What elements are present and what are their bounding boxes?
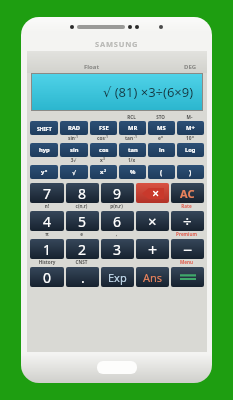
- button[interactable]: Float: [84, 63, 100, 71]
- staticText: 3: [103, 156, 105, 161]
- button[interactable]: 1: [30, 239, 64, 259]
- button[interactable]: 2: [66, 239, 99, 259]
- button[interactable]: %: [119, 165, 146, 179]
- staticText: x: [100, 168, 104, 176]
- staticText: Premium: [169, 231, 204, 237]
- staticText: 7: [43, 184, 52, 203]
- staticText: CNST: [64, 259, 99, 265]
- button[interactable]: AC: [171, 183, 204, 203]
- button[interactable]: +: [136, 239, 169, 259]
- staticText: x: [161, 134, 163, 139]
- button[interactable]: RAD: [60, 121, 88, 135]
- button[interactable]: .: [66, 267, 99, 287]
- button[interactable]: Delete: [136, 183, 169, 203]
- staticText: c(n,r): [64, 203, 99, 209]
- staticText: ): [189, 168, 192, 177]
- staticText: √ (81) ×3÷(6×9): [103, 83, 194, 101]
- button[interactable]: x: [90, 165, 117, 179]
- staticText: RCL: [117, 114, 146, 120]
- staticText: 2: [104, 168, 107, 173]
- staticText: 2: [78, 240, 87, 259]
- button[interactable]: 4: [30, 211, 64, 231]
- staticText: hyp: [39, 146, 50, 154]
- staticText: cos: [99, 146, 109, 154]
- button[interactable]: Home: [97, 361, 137, 374]
- staticText: sin: [70, 146, 79, 154]
- button[interactable]: sin: [60, 143, 88, 157]
- staticText: tan: [128, 146, 138, 154]
- staticText: Log: [185, 146, 196, 154]
- staticText: 3√: [59, 157, 88, 163]
- button[interactable]: √: [60, 165, 88, 179]
- button[interactable]: 0: [30, 267, 64, 287]
- button[interactable]: y: [30, 165, 58, 179]
- staticText: p(n,r): [99, 203, 134, 209]
- button[interactable]: ): [177, 165, 204, 179]
- button[interactable]: MS: [148, 121, 175, 135]
- staticText: y: [41, 168, 45, 176]
- staticText: .: [81, 268, 85, 287]
- staticText: Menu: [169, 259, 204, 265]
- staticText: 4: [43, 212, 52, 231]
- staticText: +: [148, 239, 158, 259]
- button[interactable]: 7: [30, 183, 64, 203]
- staticText: sin: [68, 135, 75, 142]
- staticText: ln: [159, 146, 165, 154]
- button[interactable]: cos: [90, 143, 117, 157]
- staticText: ÷: [183, 211, 192, 231]
- button[interactable]: −: [171, 239, 204, 259]
- staticText: Exp: [108, 270, 127, 285]
- button[interactable]: ÷: [171, 211, 204, 231]
- button[interactable]: DEG: [184, 63, 197, 71]
- button[interactable]: MR: [119, 121, 146, 135]
- staticText: π: [30, 231, 64, 237]
- staticText: FSE: [99, 124, 109, 132]
- staticText: 1: [43, 240, 52, 259]
- button[interactable]: (: [148, 165, 175, 179]
- staticText: MS: [157, 124, 166, 132]
- staticText: STO: [146, 114, 175, 120]
- staticText: x: [100, 157, 103, 164]
- staticText: Ans: [143, 270, 163, 285]
- staticText: 5: [78, 212, 87, 231]
- button[interactable]: Log: [177, 143, 204, 157]
- staticText: 6: [113, 212, 122, 231]
- button[interactable]: √ (81) ×3÷(6×9): [32, 74, 202, 110]
- staticText: %: [130, 168, 136, 176]
- button[interactable]: ln: [148, 143, 175, 157]
- button[interactable]: SHIFT: [30, 121, 58, 135]
- staticText: (: [160, 168, 163, 177]
- button[interactable]: Equals: [171, 267, 204, 287]
- button[interactable]: hyp: [30, 143, 58, 157]
- staticText: 10: [186, 135, 192, 142]
- staticText: ×: [148, 211, 157, 231]
- button[interactable]: Exp: [101, 267, 134, 287]
- button[interactable]: 6: [101, 211, 134, 231]
- staticText: 1/x: [117, 157, 146, 163]
- staticText: 3: [113, 240, 122, 259]
- button[interactable]: M+: [177, 121, 204, 135]
- staticText: RAD: [68, 124, 81, 132]
- staticText: −: [183, 239, 193, 259]
- button[interactable]: 8: [66, 183, 99, 203]
- staticText: n!: [30, 203, 64, 209]
- staticText: tan: [125, 135, 134, 142]
- staticText: AC: [180, 186, 195, 201]
- staticText: cos: [97, 135, 105, 142]
- button[interactable]: FSE: [90, 121, 117, 135]
- staticText: SAMSUNG: [95, 39, 139, 49]
- staticText: M-: [175, 114, 204, 120]
- staticText: History: [30, 259, 64, 265]
- button[interactable]: 5: [66, 211, 99, 231]
- staticText: e: [64, 231, 99, 237]
- staticText: e: [158, 135, 161, 142]
- button[interactable]: Ans: [136, 267, 169, 287]
- button[interactable]: ×: [136, 211, 169, 231]
- button[interactable]: 3: [101, 239, 134, 259]
- button[interactable]: tan: [119, 143, 146, 157]
- staticText: M+: [186, 124, 195, 132]
- staticText: 9: [113, 184, 122, 203]
- button[interactable]: 9: [101, 183, 134, 203]
- staticText: ,: [99, 231, 134, 237]
- staticText: 0: [43, 268, 52, 287]
